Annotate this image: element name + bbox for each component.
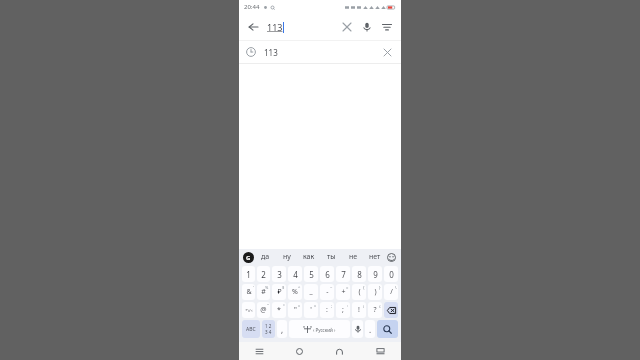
button[interactable]: '	[304, 302, 318, 318]
button[interactable]: 8	[352, 266, 366, 282]
button[interactable]: *\/<	[242, 302, 255, 318]
button[interactable]: -	[320, 284, 334, 300]
staticText: как	[303, 252, 315, 262]
staticText: '	[253, 285, 254, 290]
button[interactable]: ₽	[272, 284, 286, 300]
button[interactable]: нет	[364, 249, 386, 265]
staticText: ¡	[363, 303, 365, 308]
staticText: ‹ Русский ›	[313, 327, 336, 333]
staticText: ^	[298, 285, 301, 290]
button[interactable]: 2	[257, 266, 270, 282]
button[interactable]: Recents	[239, 342, 279, 360]
staticText: 3 4	[265, 329, 272, 335]
button[interactable]: ну	[276, 249, 298, 265]
staticText: ;	[342, 305, 344, 315]
button[interactable]: Voice search	[359, 19, 375, 35]
button[interactable]: 1	[242, 266, 255, 282]
button[interactable]: #	[257, 284, 270, 300]
button[interactable]: )	[368, 284, 382, 300]
staticText: 9	[373, 269, 378, 280]
button[interactable]: ?	[368, 302, 382, 318]
button[interactable]: Back	[319, 342, 360, 360]
staticText: "	[267, 303, 269, 308]
button[interactable]: 3	[272, 266, 286, 282]
staticText: ¿	[379, 303, 381, 308]
button[interactable]: ты	[320, 249, 342, 265]
staticText: 5	[309, 269, 314, 280]
button[interactable]: как	[298, 249, 320, 265]
staticText: ты	[327, 252, 336, 262]
staticText: _	[309, 287, 313, 297]
staticText: да	[261, 252, 270, 262]
staticText: %	[292, 287, 298, 297]
button[interactable]: !	[352, 302, 366, 318]
staticText: :	[326, 305, 328, 315]
staticText: 113	[267, 21, 283, 33]
staticText: :	[347, 303, 349, 308]
staticText: ;	[331, 303, 333, 308]
staticText: \	[395, 285, 397, 290]
staticText: ?	[373, 305, 377, 315]
button[interactable]: &	[242, 284, 255, 300]
staticText: !	[358, 305, 360, 315]
staticText: ,	[281, 324, 284, 335]
button[interactable]: 6	[320, 266, 334, 282]
button[interactable]: ;	[336, 302, 350, 318]
button[interactable]: да	[254, 249, 276, 265]
button[interactable]: "	[288, 302, 302, 318]
button[interactable]: *	[272, 302, 286, 318]
button[interactable]: @	[257, 302, 270, 318]
staticText: «	[298, 303, 301, 308]
staticText: {	[363, 285, 365, 290]
staticText: G	[246, 254, 251, 262]
staticText: *	[277, 305, 281, 315]
button[interactable]: Search	[377, 320, 398, 338]
button[interactable]: 5	[304, 266, 318, 282]
button[interactable]: Filter	[379, 19, 395, 35]
staticText: 113	[264, 47, 278, 58]
button[interactable]: .	[365, 320, 375, 338]
button[interactable]: 9	[368, 266, 382, 282]
button[interactable]: Hide keyboard	[360, 342, 401, 360]
button[interactable]: :	[320, 302, 334, 318]
staticText: ~	[330, 285, 333, 290]
button[interactable]: Voice input	[352, 320, 363, 338]
staticText: 1	[246, 269, 251, 280]
button[interactable]: 1 2	[262, 320, 275, 338]
button[interactable]: _	[304, 284, 318, 300]
button[interactable]: Home	[279, 342, 319, 360]
staticText: 4	[293, 269, 298, 280]
button[interactable]: 7	[336, 266, 350, 282]
button[interactable]: 0	[384, 266, 398, 282]
staticText: }	[379, 285, 381, 290]
button[interactable]: 113	[239, 41, 401, 63]
button[interactable]: 4	[288, 266, 302, 282]
staticText: 2	[261, 269, 266, 280]
button[interactable]: Google	[243, 252, 254, 263]
button[interactable]: Backspace	[384, 302, 398, 318]
button[interactable]: %	[288, 284, 302, 300]
button[interactable]: +	[336, 284, 350, 300]
button[interactable]: Remove	[380, 45, 394, 59]
button[interactable]: Clear	[339, 19, 355, 35]
staticText: 7	[341, 269, 346, 280]
staticText: 3	[277, 269, 282, 280]
staticText: ну	[283, 252, 291, 262]
staticText: /	[390, 287, 393, 297]
staticText: (	[358, 287, 361, 297]
staticText: .	[369, 324, 372, 335]
staticText: нет	[369, 252, 381, 262]
staticText: =	[346, 285, 349, 290]
button[interactable]: /	[384, 284, 398, 300]
staticText: @	[260, 305, 267, 315]
button[interactable]: (	[352, 284, 366, 300]
staticText: »	[314, 303, 317, 308]
button[interactable]: Back	[245, 19, 261, 35]
staticText: 20:44	[244, 3, 260, 11]
button[interactable]: ‹ Русский ›	[289, 320, 350, 338]
button[interactable]: ABC	[242, 320, 260, 338]
staticText: %	[265, 285, 269, 290]
button[interactable]: не	[342, 249, 364, 265]
button[interactable]: Emoji	[386, 252, 397, 263]
button[interactable]: ,	[277, 320, 287, 338]
